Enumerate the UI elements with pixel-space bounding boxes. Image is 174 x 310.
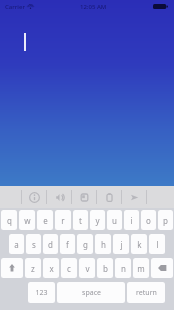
button[interactable]: Info [22,186,46,208]
button[interactable]: k [131,234,147,254]
button[interactable]: q [1,210,17,230]
staticText: g [83,239,88,250]
staticText: space [82,288,101,298]
button[interactable]: b [97,258,113,278]
button[interactable]: c [61,258,77,278]
staticText: b [103,263,108,274]
button[interactable]: d [43,234,58,254]
staticText: o [146,215,151,226]
staticText: q [7,215,12,226]
button[interactable]: e [37,210,53,230]
staticText: a [14,239,19,250]
button[interactable]: return [127,282,165,303]
button[interactable]: Clipboard [97,186,121,208]
button[interactable]: i [124,210,139,230]
button[interactable]: h [95,234,111,254]
button[interactable]: z [25,258,41,278]
button[interactable]: Shift [1,258,23,278]
staticText: 123 [35,288,48,298]
button[interactable]: x [43,258,59,278]
button[interactable]: Photos [72,186,96,208]
staticText: 12:05 AM [80,3,107,11]
button[interactable]: Send [122,186,146,208]
staticText: r [61,215,65,226]
staticText: h [101,239,106,250]
staticText: Carrier [5,3,25,11]
button[interactable]: u [107,210,122,230]
button[interactable]: Backspace [151,258,173,278]
button[interactable]: l [149,234,165,254]
staticText: return [136,288,157,298]
button[interactable]: t [73,210,88,230]
button[interactable]: f [60,234,75,254]
staticText: k [137,239,142,250]
button[interactable]: o [141,210,156,230]
button[interactable]: g [77,234,93,254]
staticText: l [156,239,159,250]
button[interactable]: 123 [28,282,55,303]
staticText: s [32,239,36,250]
staticText: m [137,263,145,274]
button[interactable]: a [9,234,24,254]
staticText: y [95,215,100,226]
button[interactable]: Volume [47,186,71,208]
button[interactable]: space [57,282,125,303]
button[interactable]: y [90,210,105,230]
staticText: z [31,263,35,274]
button[interactable]: j [113,234,129,254]
staticText: f [66,239,69,250]
staticText: p [163,215,168,226]
button[interactable]: m [133,258,149,278]
staticText: w [24,215,31,226]
staticText: d [48,239,53,250]
button[interactable]: r [55,210,71,230]
staticText: i [130,215,133,226]
staticText: j [120,239,123,250]
button[interactable]: p [158,210,173,230]
staticText: n [121,263,126,274]
staticText: u [112,215,117,226]
staticText: t [79,215,82,226]
staticText: v [85,263,90,274]
button[interactable]: v [79,258,95,278]
staticText: x [49,263,54,274]
staticText: c [67,263,71,274]
button[interactable]: w [19,210,35,230]
button[interactable]: s [26,234,41,254]
button[interactable]: n [115,258,131,278]
staticText: e [43,215,48,226]
